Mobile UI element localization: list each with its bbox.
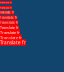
staticText: Translate fr <box>0 6 12 9</box>
staticText: Translate fr <box>0 15 17 20</box>
staticText: Translate fr <box>0 39 26 46</box>
staticText: Translate fr <box>0 1 12 4</box>
staticText: Translate fr <box>0 30 20 35</box>
staticText: Translate fr <box>0 11 14 14</box>
staticText: Translate fr <box>0 25 19 30</box>
staticText: Translate fr <box>0 20 18 25</box>
staticText: Translate fr <box>0 34 22 40</box>
